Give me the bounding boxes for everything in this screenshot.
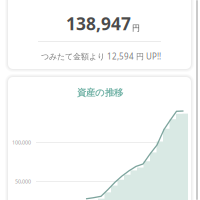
staticText: 138,947 <box>66 12 131 35</box>
staticText: つみたて金額より 12,594 円 UP!! <box>41 51 161 62</box>
staticText: 50,000 <box>15 178 31 185</box>
staticText: 100,000 <box>12 139 31 146</box>
staticText: 資産の推移 <box>77 87 123 98</box>
staticText: 円 <box>132 23 140 33</box>
